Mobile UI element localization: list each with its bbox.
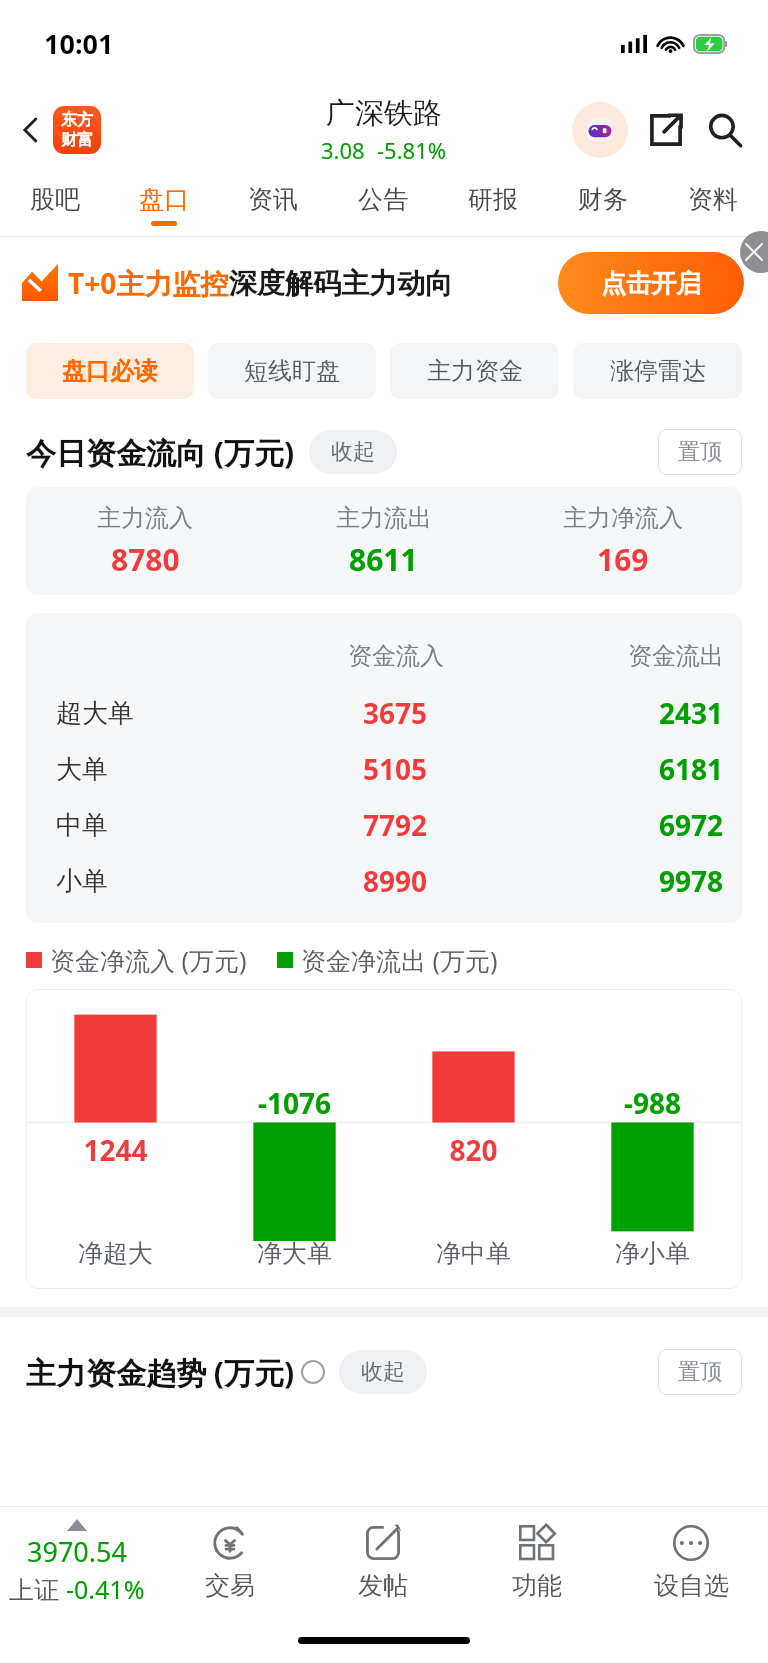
button[interactable]: AI assistant bbox=[572, 102, 628, 158]
button[interactable]: Search bbox=[700, 105, 750, 155]
button[interactable]: 资料 bbox=[658, 174, 768, 236]
staticText: 10:01 bbox=[44, 25, 114, 62]
staticText: 今日资金流向 (万元) bbox=[26, 432, 295, 473]
staticText: 2431 bbox=[659, 694, 724, 732]
staticText: 主力资金 bbox=[427, 356, 523, 386]
staticText: 主力资金趋势 (万元) bbox=[26, 1352, 295, 1393]
staticText: 8990 bbox=[363, 862, 428, 900]
button[interactable]: 主力资金 bbox=[390, 343, 559, 399]
staticText: 1244 bbox=[26, 1131, 205, 1169]
button[interactable]: East Money bbox=[53, 106, 101, 154]
staticText: 7792 bbox=[363, 806, 428, 844]
staticText: 5105 bbox=[363, 750, 428, 788]
staticText: 资金流入 bbox=[348, 641, 444, 671]
staticText: 6181 bbox=[659, 750, 724, 788]
staticText: 6972 bbox=[659, 806, 724, 844]
staticText: 上证 bbox=[9, 1572, 66, 1606]
staticText: 净超大 bbox=[26, 1238, 205, 1269]
button[interactable]: Close ad bbox=[740, 231, 768, 273]
staticText: -1076 bbox=[205, 1084, 384, 1122]
button[interactable]: 发帖 bbox=[306, 1507, 460, 1617]
staticText: 3675 bbox=[363, 694, 428, 732]
staticText: 收起 bbox=[361, 1358, 405, 1386]
button[interactable]: 3970.54 bbox=[0, 1507, 153, 1617]
staticText: 3970.54 bbox=[27, 1533, 127, 1570]
button[interactable]: 盘口 bbox=[109, 174, 218, 236]
staticText: 研报 bbox=[468, 184, 518, 215]
staticText: 股吧 bbox=[30, 184, 80, 215]
button[interactable]: 收起 bbox=[339, 1350, 427, 1394]
staticText: 资金净流出 (万元) bbox=[301, 943, 498, 977]
staticText: 功能 bbox=[512, 1570, 562, 1601]
staticText: 置顶 bbox=[678, 1358, 722, 1386]
button[interactable]: 置顶 bbox=[658, 1349, 742, 1395]
staticText: 财务 bbox=[578, 184, 628, 215]
button[interactable]: 涨停雷达 bbox=[573, 343, 742, 399]
button[interactable]: 盘口必读 bbox=[26, 343, 194, 399]
staticText: 收起 bbox=[331, 438, 375, 466]
staticText: 3.08 bbox=[321, 135, 365, 165]
staticText: 资讯 bbox=[248, 184, 298, 215]
staticText: 东方 bbox=[61, 110, 93, 130]
staticText: 广深铁路 bbox=[326, 95, 442, 132]
staticText: -0.41% bbox=[66, 1572, 145, 1606]
staticText: 交易 bbox=[205, 1570, 255, 1601]
button[interactable]: 置顶 bbox=[658, 429, 742, 475]
button[interactable]: 收起 bbox=[309, 430, 397, 474]
staticText: 主力流出 bbox=[336, 503, 432, 533]
staticText: -988 bbox=[563, 1084, 742, 1122]
staticText: 资金流出 bbox=[628, 641, 724, 671]
button[interactable]: Share bbox=[642, 106, 690, 154]
staticText: 净小单 bbox=[563, 1238, 742, 1269]
staticText: 净大单 bbox=[205, 1238, 384, 1269]
staticText: T+0主力监控 bbox=[68, 264, 229, 302]
staticText: 大单 bbox=[56, 753, 108, 786]
staticText: 点击开启 bbox=[601, 268, 701, 299]
staticText: 资金净流入 (万元) bbox=[50, 943, 247, 977]
staticText: 资料 bbox=[688, 184, 738, 215]
staticText: 820 bbox=[384, 1131, 563, 1169]
button[interactable]: 资金流入 bbox=[26, 627, 742, 909]
staticText: 8780 bbox=[111, 539, 180, 580]
button[interactable]: T+0主力监控 bbox=[20, 252, 744, 314]
staticText: 公告 bbox=[358, 184, 408, 215]
button[interactable]: 功能 bbox=[460, 1507, 614, 1617]
staticText: 涨停雷达 bbox=[610, 356, 706, 386]
button[interactable]: 资讯 bbox=[218, 174, 328, 236]
staticText: 超大单 bbox=[56, 697, 134, 730]
staticText: 短线盯盘 bbox=[244, 356, 340, 386]
button[interactable]: Back bbox=[8, 107, 54, 153]
button[interactable]: 股吧 bbox=[0, 174, 109, 236]
button[interactable]: 1244 bbox=[26, 989, 742, 1289]
staticText: 8611 bbox=[349, 539, 418, 580]
button[interactable]: 设自选 bbox=[614, 1507, 768, 1617]
button[interactable]: 财务 bbox=[548, 174, 658, 236]
staticText: 置顶 bbox=[678, 438, 722, 466]
staticText: -5.81% bbox=[377, 135, 447, 165]
button[interactable]: 短线盯盘 bbox=[208, 343, 376, 399]
staticText: 9978 bbox=[659, 862, 724, 900]
staticText: 盘口必读 bbox=[62, 356, 158, 386]
button[interactable]: 主力流入 bbox=[26, 487, 742, 595]
staticText: 净中单 bbox=[384, 1238, 563, 1269]
staticText: 深度解码主力动向 bbox=[229, 266, 453, 301]
staticText: 主力净流入 bbox=[563, 503, 683, 533]
staticText: 设自选 bbox=[654, 1570, 729, 1601]
button[interactable]: 点击开启 bbox=[558, 252, 744, 314]
staticText: 主力流入 bbox=[97, 503, 193, 533]
button[interactable]: 交易 bbox=[153, 1507, 306, 1617]
staticText: 盘口 bbox=[139, 184, 189, 215]
button[interactable]: 研报 bbox=[438, 174, 548, 236]
staticText: 中单 bbox=[56, 809, 108, 842]
staticText: 发帖 bbox=[358, 1570, 408, 1601]
button[interactable]: 公告 bbox=[328, 174, 438, 236]
staticText: 小单 bbox=[56, 865, 108, 898]
staticText: 169 bbox=[597, 539, 649, 580]
staticText: 财富 bbox=[61, 130, 93, 150]
